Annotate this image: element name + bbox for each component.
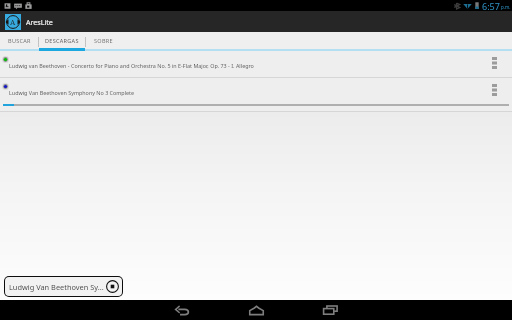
staticText: BUSCAR [8,37,31,44]
button[interactable]: Ludwig Van Beethoven Symphony No 3 Compl… [0,78,512,112]
staticText: Ludwig Van Beethoven Sy... [9,282,104,292]
staticText: Ludwig van Beethoven - Concerto for Pian… [9,62,254,69]
button[interactable]: Home [241,300,271,320]
staticText: 6:57 [482,0,500,11]
staticText: DESCARGAS [45,37,79,44]
button[interactable]: Back [167,300,197,320]
button[interactable]: Stop playback [105,279,120,294]
button[interactable]: More options [486,82,502,98]
button[interactable]: SOBRE [86,32,121,51]
staticText: Ludwig Van Beethoven Symphony No 3 Compl… [9,89,135,96]
staticText: AresLite [26,17,53,27]
button[interactable]: Ludwig Van Beethoven Sy... [5,277,122,296]
button[interactable]: Ludwig van Beethoven - Concerto for Pian… [0,51,512,78]
button[interactable]: DESCARGAS [39,32,85,51]
staticText: p.m. [501,4,511,10]
button[interactable]: Recent apps [315,300,345,320]
staticText: SOBRE [94,37,113,44]
staticText: A [10,17,16,27]
button[interactable]: BUSCAR [0,32,38,51]
button[interactable]: More options [486,55,502,71]
